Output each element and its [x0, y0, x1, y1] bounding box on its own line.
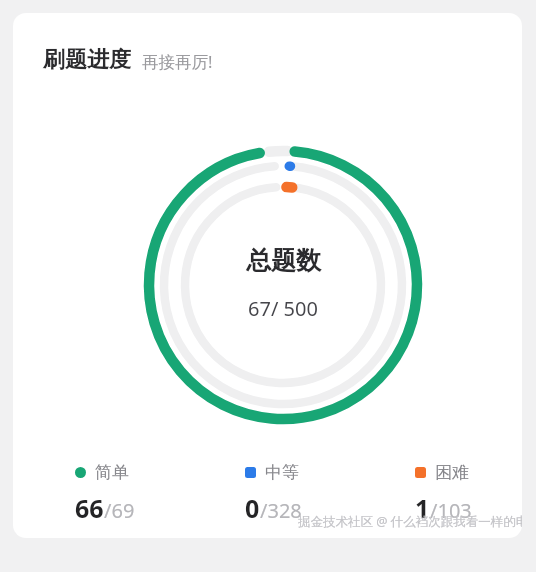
staticText: 困难	[435, 462, 469, 483]
staticText: 再接再厉!	[142, 50, 213, 73]
button[interactable]: 简单	[75, 462, 179, 525]
staticText: 中等	[265, 462, 299, 483]
staticText: 1	[415, 491, 430, 525]
button[interactable]: 困难	[415, 462, 494, 525]
staticText: 总题数	[246, 245, 321, 276]
staticText: 0	[245, 491, 260, 525]
staticText: 简单	[95, 462, 129, 483]
button[interactable]: 中等	[245, 462, 349, 525]
staticText: 66	[75, 491, 104, 525]
staticText: 掘金技术社区 @ 什么裆次跟我看一样的电视	[298, 513, 522, 530]
button[interactable]: 刷题进度	[13, 13, 522, 538]
staticText: 67/ 500	[248, 295, 318, 322]
staticText: /103	[430, 497, 472, 524]
staticText: 刷题进度	[43, 46, 131, 74]
staticText: /69	[104, 497, 135, 524]
staticText: /328	[260, 497, 302, 524]
